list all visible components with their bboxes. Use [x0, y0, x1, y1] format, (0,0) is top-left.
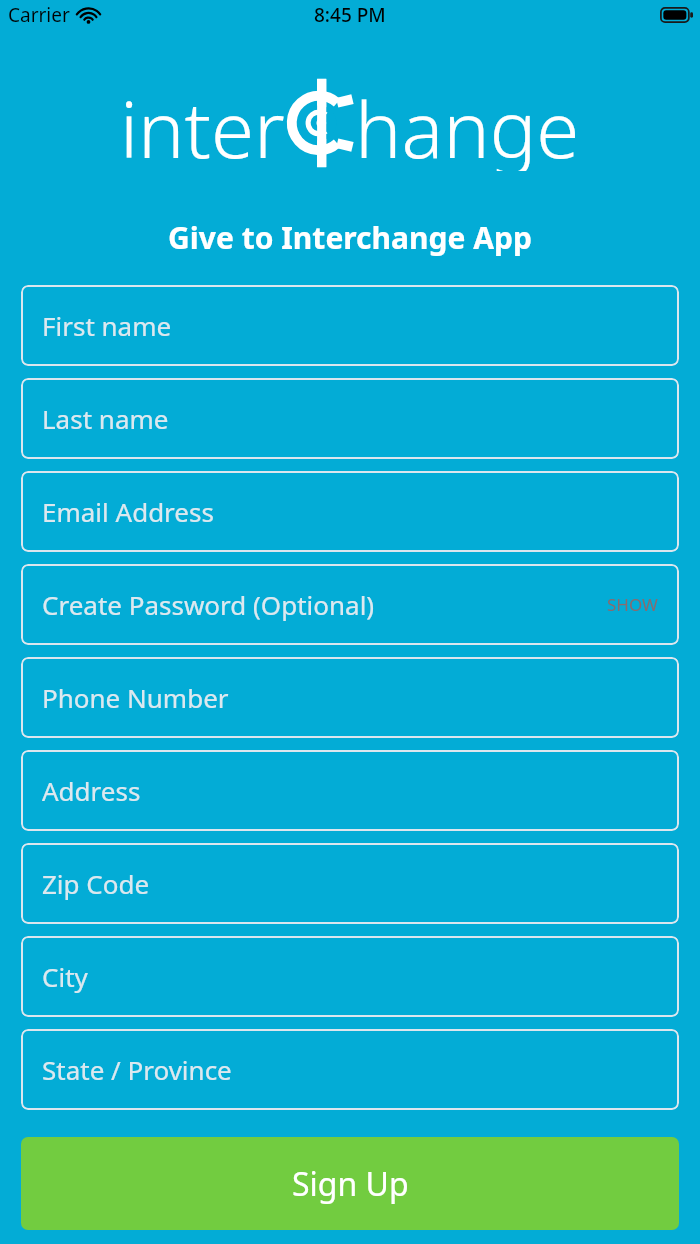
button[interactable]: First name [21, 285, 679, 366]
staticText: Address [42, 773, 141, 808]
staticText: Email Address [42, 494, 214, 529]
staticText: First name [42, 308, 172, 343]
staticText: hange [355, 75, 580, 171]
staticText: Last name [42, 401, 169, 436]
button[interactable]: Address [21, 750, 679, 831]
staticText: Phone Number [42, 680, 229, 715]
button[interactable]: State / Province [21, 1029, 679, 1110]
button[interactable]: SHOW [595, 587, 658, 622]
button[interactable]: Phone Number [21, 657, 679, 738]
staticText: inter [120, 75, 285, 171]
staticText: Carrier [8, 2, 70, 28]
staticText: Give to Interchange App [168, 217, 532, 258]
button[interactable]: Last name [21, 378, 679, 459]
button[interactable]: Sign Up [21, 1137, 679, 1230]
button[interactable]: City [21, 936, 679, 1017]
staticText: Zip Code [42, 866, 150, 901]
staticText: Sign Up [292, 1162, 409, 1206]
button[interactable]: Zip Code [21, 843, 679, 924]
staticText: SHOW [607, 593, 658, 616]
staticText: State / Province [42, 1052, 232, 1087]
button[interactable]: Email Address [21, 471, 679, 552]
staticText: 8:45 PM [314, 2, 386, 28]
staticText: Create Password (Optional) [42, 587, 375, 622]
staticText: City [42, 959, 88, 994]
button[interactable]: Create Password (Optional) [21, 564, 679, 645]
